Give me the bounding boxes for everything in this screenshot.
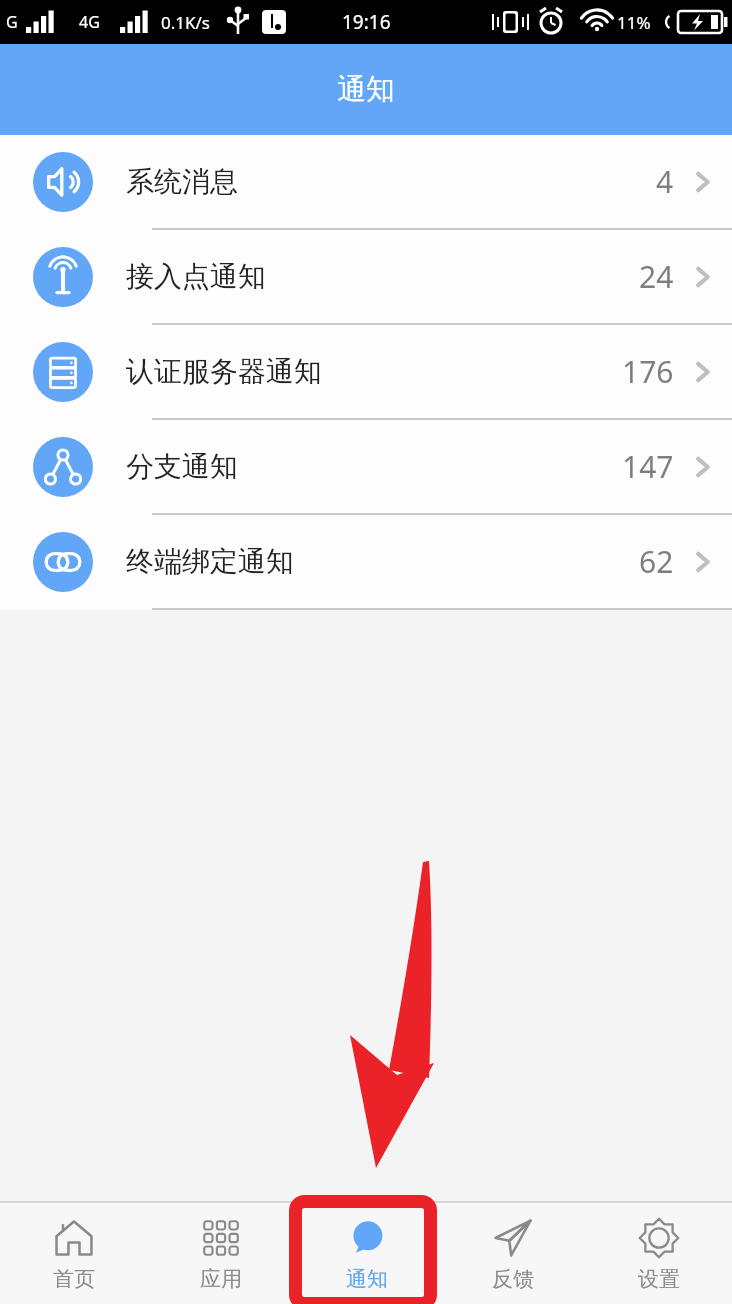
staticText: 4 <box>656 161 674 202</box>
button[interactable]: 设置 <box>586 1203 732 1304</box>
button[interactable]: 通知 <box>294 1203 440 1304</box>
staticText: 0.1K/s <box>161 11 210 34</box>
button[interactable]: 接入点通知 <box>0 230 732 323</box>
staticText: 147 <box>622 446 674 487</box>
staticText: 24 <box>639 256 674 297</box>
button[interactable]: 终端绑定通知 <box>0 515 732 608</box>
staticText: 系统消息 <box>126 164 656 199</box>
staticText: G <box>6 11 18 33</box>
button[interactable]: 首页 <box>0 1203 147 1304</box>
button[interactable]: 认证服务器通知 <box>0 325 732 418</box>
button[interactable]: 反馈 <box>440 1203 586 1304</box>
staticText: 反馈 <box>492 1266 534 1292</box>
staticText: 接入点通知 <box>126 259 639 294</box>
staticText: 4G <box>79 11 100 33</box>
staticText: 通知 <box>337 71 395 108</box>
staticText: 通知 <box>346 1266 388 1292</box>
button[interactable]: 系统消息 <box>0 135 732 228</box>
button[interactable]: 应用 <box>147 1203 294 1304</box>
staticText: 19:16 <box>342 9 391 35</box>
staticText: 应用 <box>200 1266 242 1292</box>
staticText: 认证服务器通知 <box>126 354 622 389</box>
button[interactable]: 分支通知 <box>0 420 732 513</box>
staticText: 设置 <box>638 1266 680 1292</box>
staticText: 11% <box>617 11 651 34</box>
staticText: 分支通知 <box>126 449 622 484</box>
staticText: 首页 <box>53 1266 95 1292</box>
staticText: 176 <box>622 351 674 392</box>
staticText: 62 <box>639 541 674 582</box>
staticText: 终端绑定通知 <box>126 544 639 579</box>
